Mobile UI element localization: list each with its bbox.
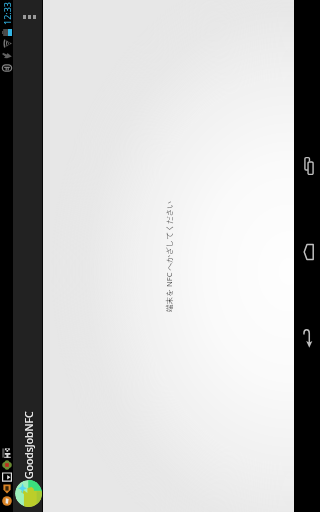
staticText: 12:33 xyxy=(1,1,13,25)
button[interactable]: Back xyxy=(298,295,320,381)
button[interactable]: Home xyxy=(298,209,320,295)
button[interactable]: More options xyxy=(13,0,42,34)
button[interactable]: Recent apps xyxy=(298,123,320,209)
staticText: 端末を NFC へかざしてください xyxy=(164,200,174,312)
button[interactable]: GoodsJobNFC xyxy=(13,411,42,512)
staticText: GoodsJobNFC xyxy=(22,411,36,479)
